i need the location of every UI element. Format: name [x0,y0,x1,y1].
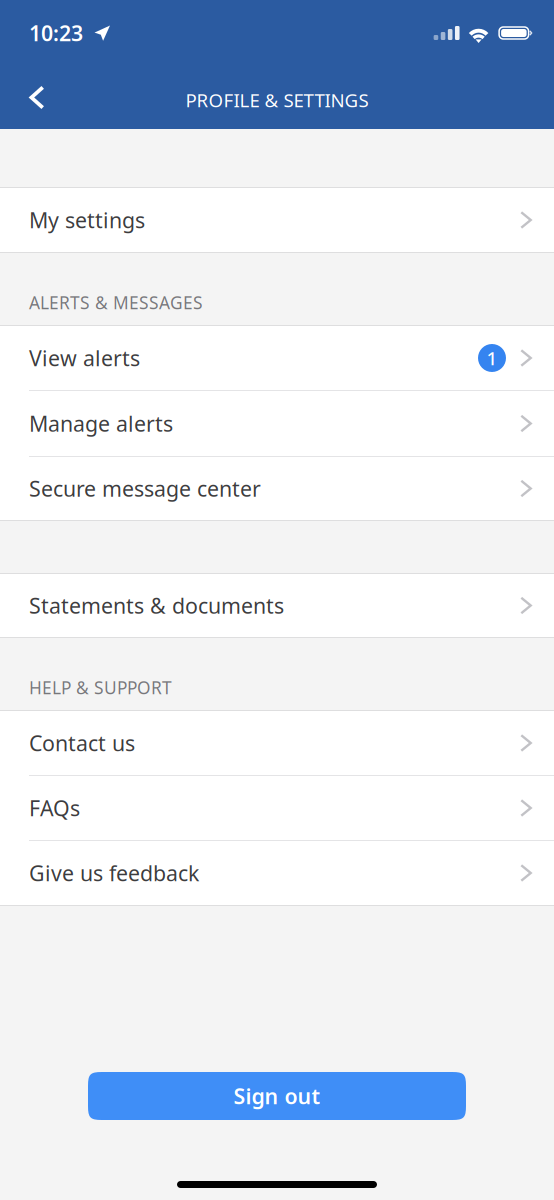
staticText: Sign out [233,1082,320,1110]
button[interactable]: FAQs [0,776,554,840]
staticText: HELP & SUPPORT [29,676,172,699]
button[interactable]: Back [11,71,63,123]
staticText: My settings [29,206,145,234]
staticText: PROFILE & SETTINGS [185,88,368,112]
button[interactable]: Statements & documents [0,574,554,637]
button[interactable]: Contact us [0,711,554,775]
staticText: View alerts [29,344,140,372]
staticText: Secure message center [29,474,261,503]
button[interactable]: Give us feedback [0,841,554,905]
staticText: 10:23 [29,19,83,47]
button[interactable]: Sign out [88,1072,466,1120]
button[interactable]: View alerts [0,326,554,390]
staticText: ALERTS & MESSAGES [29,291,203,314]
button[interactable]: My settings [0,188,554,252]
staticText: Give us feedback [29,859,199,887]
staticText: Contact us [29,729,135,757]
button[interactable]: Secure message center [0,457,554,520]
staticText: Statements & documents [29,591,284,620]
button[interactable]: Manage alerts [0,391,554,456]
staticText: Manage alerts [29,409,173,438]
staticText: FAQs [29,794,80,822]
staticText: 1 [486,346,497,370]
